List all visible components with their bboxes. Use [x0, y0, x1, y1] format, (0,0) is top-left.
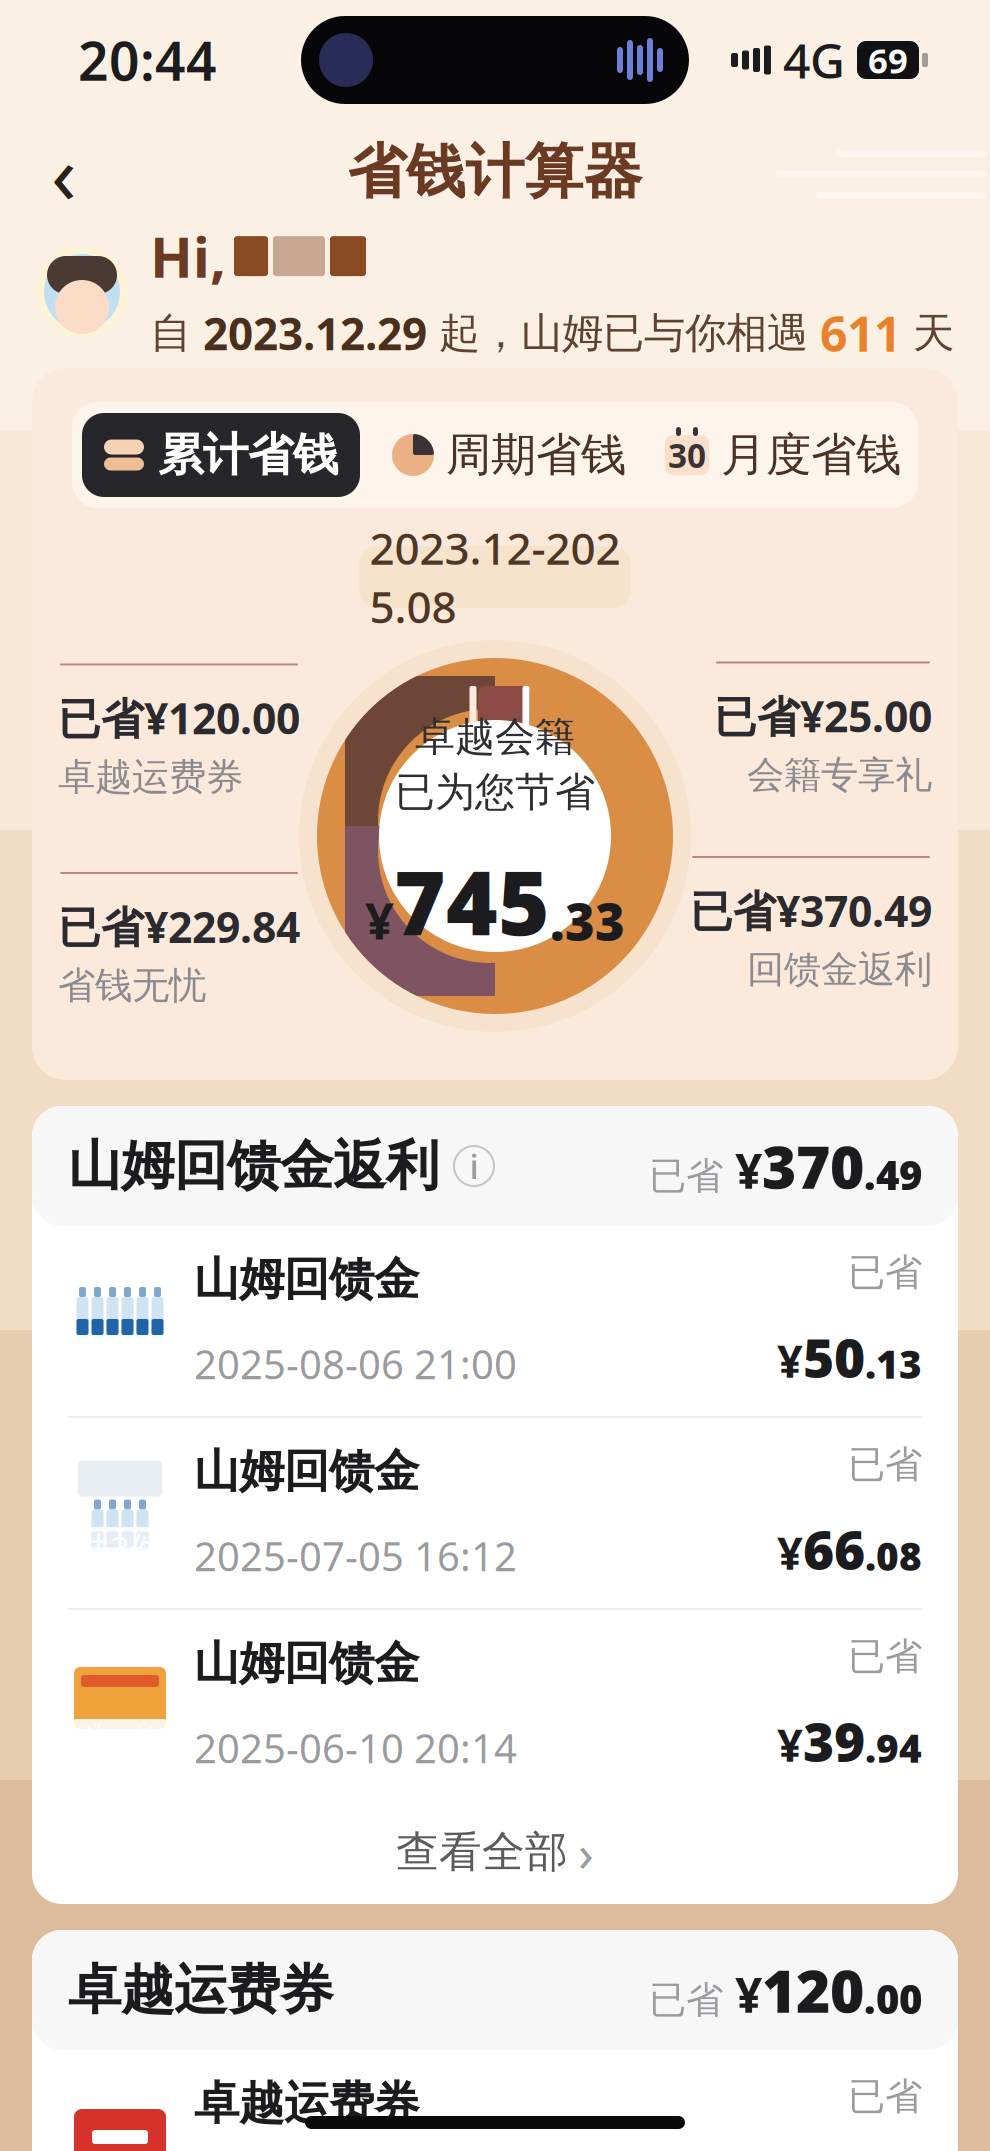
staticText: ¥: [723, 1138, 762, 1202]
staticText: 50: [803, 1321, 865, 1392]
staticText: 卓越运费券: [58, 754, 243, 800]
staticText: 2025-07-05 16:12: [194, 1529, 517, 1582]
staticText: 已为您节省: [395, 768, 595, 817]
staticText: 山姆回馈金: [194, 1636, 419, 1691]
staticText: 20:44: [78, 25, 217, 95]
staticText: 69: [868, 37, 908, 83]
staticText: Hi,: [150, 219, 226, 293]
staticText: 月度省钱: [721, 427, 901, 483]
staticText: 共3件: [77, 1526, 162, 1570]
staticText: 已省¥25.00: [714, 687, 932, 744]
staticText: 39: [803, 1705, 865, 1776]
button[interactable]: 返回: [16, 124, 112, 220]
staticText: ¥: [777, 1522, 803, 1582]
staticText: 天: [901, 308, 954, 359]
button[interactable]: 说明: [439, 1145, 495, 1187]
button[interactable]: 查看全部: [32, 1800, 958, 1904]
staticText: 2025-06-10 20:14: [194, 1721, 517, 1774]
staticText: 已省¥120.00: [58, 689, 300, 746]
staticText: 已省: [848, 1634, 922, 1680]
button[interactable]: 累计省钱: [82, 413, 360, 497]
staticText: 370: [762, 1127, 864, 1205]
staticText: 山姆回馈金: [194, 1444, 419, 1499]
staticText: ¥: [365, 886, 394, 954]
staticText: .33: [550, 887, 625, 955]
button[interactable]: 共3件: [32, 1610, 958, 1800]
staticText: 2025-08-06 21:00: [194, 1337, 517, 1390]
staticText: 745: [394, 843, 550, 960]
staticText: 共3件: [77, 1718, 162, 1762]
staticText: .49: [864, 1148, 922, 1201]
staticText: .94: [865, 1722, 922, 1773]
staticText: 周期省钱: [446, 427, 626, 483]
staticText: ¥: [777, 1714, 803, 1774]
staticText: ‹: [51, 117, 77, 227]
button[interactable]: 共3件: [32, 1226, 958, 1416]
staticText: 卓越运费券: [68, 1957, 333, 2023]
button[interactable]: 共3件: [32, 1418, 958, 1608]
staticText: 查看全部: [396, 1826, 568, 1878]
staticText: 30: [668, 433, 706, 477]
staticText: 会籍专享礼: [747, 752, 932, 798]
staticText: 起，山姆已与你相遇: [427, 308, 820, 359]
staticText: 已省: [848, 1250, 922, 1296]
staticText: 省钱计算器: [347, 136, 642, 208]
button[interactable]: 30: [658, 413, 908, 497]
staticText: 2023.12.29: [203, 304, 427, 362]
staticText: 已省: [848, 2074, 922, 2120]
button[interactable]: 周期省钱: [384, 413, 634, 497]
staticText: i: [469, 1143, 478, 1189]
staticText: 4G: [783, 28, 845, 92]
staticText: 省钱无忧: [58, 963, 206, 1009]
staticText: 611: [820, 301, 901, 365]
staticText: 累计省钱: [158, 427, 338, 483]
staticText: 已省¥370.49: [690, 882, 932, 939]
staticText: ¥: [777, 1330, 803, 1390]
staticText: 已省: [649, 1153, 723, 1199]
staticText: .13: [865, 1338, 922, 1389]
staticText: 120: [762, 1951, 864, 2029]
staticText: 回馈金返利: [747, 947, 932, 993]
staticText: 已省: [848, 1442, 922, 1488]
staticText: .08: [865, 1530, 922, 1581]
staticText: 已省: [649, 1977, 723, 2023]
staticText: 已省¥229.84: [58, 898, 300, 955]
staticText: 卓越会籍: [415, 712, 575, 761]
staticText: ¥: [723, 1962, 762, 2026]
staticText: .00: [864, 1972, 922, 2025]
staticText: 66: [803, 1513, 865, 1584]
staticText: 2023.12-2025.08: [369, 519, 620, 635]
staticText: 山姆回馈金返利: [68, 1133, 439, 1199]
staticText: ›: [578, 1818, 594, 1886]
staticText: 卓越运费券: [194, 2076, 419, 2131]
button[interactable]: 共3件: [32, 2050, 958, 2151]
staticText: 共3件: [77, 1334, 162, 1378]
staticText: 山姆回馈金: [194, 1252, 419, 1307]
staticText: 自: [150, 308, 203, 359]
